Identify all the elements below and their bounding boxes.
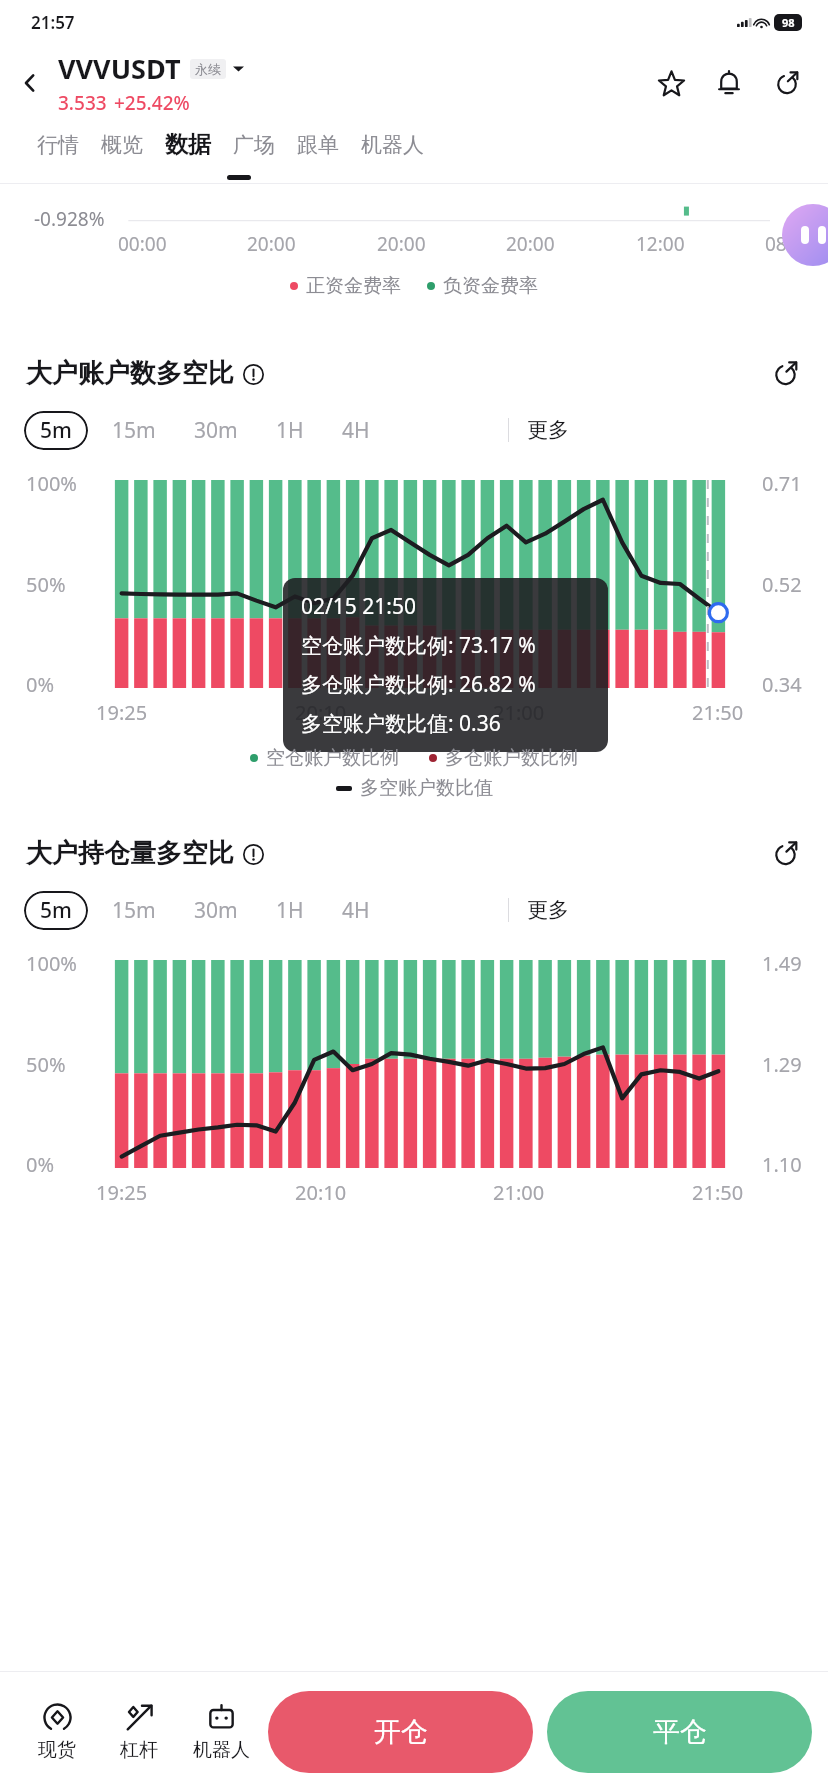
staticText: 15m bbox=[112, 896, 156, 925]
staticText: 0% bbox=[26, 1151, 55, 1178]
staticText: 1H bbox=[276, 896, 304, 925]
staticText: 4H bbox=[342, 896, 370, 925]
staticText: 08:00 bbox=[765, 231, 814, 257]
button[interactable]: 机器人 bbox=[350, 124, 435, 166]
staticText: 0% bbox=[26, 671, 55, 698]
staticText: 开仓 bbox=[374, 1715, 428, 1749]
button[interactable]: 15m bbox=[98, 408, 170, 453]
staticText: 现货 bbox=[38, 1738, 76, 1762]
button[interactable]: 跟单 bbox=[286, 124, 350, 166]
staticText: 50% bbox=[26, 1051, 66, 1078]
button[interactable]: Expand chart bbox=[764, 832, 806, 874]
staticText: 12:00 bbox=[636, 231, 685, 257]
staticText: 30m bbox=[194, 896, 238, 925]
button[interactable]: 杠杆 bbox=[98, 1696, 180, 1768]
staticText: 大户账户数多空比 bbox=[26, 357, 234, 390]
staticText: 1.49 bbox=[762, 950, 802, 977]
staticText: 跟单 bbox=[297, 132, 339, 158]
staticText: 21:00 bbox=[493, 1179, 545, 1206]
staticText: 20:10 bbox=[295, 699, 347, 726]
staticText: 21:00 bbox=[493, 699, 545, 726]
staticText: 平仓 bbox=[653, 1715, 707, 1749]
staticText: 02/15 21:50 bbox=[301, 592, 416, 621]
staticText: 数据 bbox=[165, 130, 211, 159]
staticText: +25.42% bbox=[114, 90, 190, 116]
staticText: 5m bbox=[40, 896, 72, 925]
button[interactable]: 更多 bbox=[509, 889, 573, 931]
staticText: 负资金费率 bbox=[443, 274, 538, 298]
staticText: 30m bbox=[194, 416, 238, 445]
staticText: 多空账户数比值 bbox=[360, 776, 493, 800]
button[interactable]: Back bbox=[8, 61, 52, 105]
staticText: 多空账户数比值: 0.36 bbox=[301, 709, 501, 738]
staticText: 更多 bbox=[527, 417, 569, 443]
staticText: -0.928% bbox=[34, 206, 105, 232]
staticText: 行情 bbox=[37, 132, 79, 158]
staticText: 100% bbox=[26, 470, 77, 497]
button[interactable]: Alerts bbox=[706, 60, 752, 106]
staticText: 21:57 bbox=[31, 11, 75, 34]
staticText: 19:25 bbox=[96, 1179, 148, 1206]
staticText: 20:00 bbox=[247, 231, 296, 257]
button[interactable]: 15m bbox=[98, 888, 170, 933]
button[interactable]: 数据 bbox=[154, 122, 222, 167]
staticText: 19:25 bbox=[96, 699, 148, 726]
staticText: 00:00 bbox=[118, 231, 167, 257]
button[interactable]: 开仓 bbox=[268, 1691, 533, 1773]
staticText: 机器人 bbox=[193, 1738, 250, 1762]
button[interactable]: Select contract bbox=[233, 63, 244, 74]
staticText: 4H bbox=[342, 416, 370, 445]
staticText: 20:00 bbox=[506, 231, 555, 257]
staticText: 机器人 bbox=[361, 132, 424, 158]
button[interactable]: 30m bbox=[180, 408, 252, 453]
button[interactable]: 更多 bbox=[509, 409, 573, 451]
staticText: 98 bbox=[782, 15, 795, 30]
button[interactable]: 4H bbox=[328, 408, 384, 453]
staticText: 21:50 bbox=[692, 699, 744, 726]
staticText: 15m bbox=[112, 416, 156, 445]
staticText: 5m bbox=[40, 416, 72, 445]
staticText: 100% bbox=[26, 950, 77, 977]
staticText: 更多 bbox=[527, 897, 569, 923]
button[interactable]: 5m bbox=[24, 411, 88, 450]
button[interactable]: 平仓 bbox=[547, 1691, 812, 1773]
staticText: 1.10 bbox=[762, 1151, 802, 1178]
button[interactable]: 机器人 bbox=[180, 1696, 262, 1768]
staticText: 20:10 bbox=[295, 1179, 347, 1206]
staticText: 大户持仓量多空比 bbox=[26, 837, 234, 870]
staticText: 空仓账户数比例 bbox=[266, 746, 399, 770]
button[interactable]: 1H bbox=[262, 408, 318, 453]
button[interactable]: 广场 bbox=[222, 124, 286, 166]
button[interactable]: Info bbox=[241, 842, 265, 866]
button[interactable]: Share bbox=[764, 60, 810, 106]
staticText: 空仓账户数比例: 73.17 % bbox=[301, 631, 536, 660]
button[interactable]: Info bbox=[241, 362, 265, 386]
staticText: 1.29 bbox=[762, 1051, 802, 1078]
button[interactable]: Expand chart bbox=[764, 352, 806, 394]
staticText: 正资金费率 bbox=[306, 274, 401, 298]
button[interactable]: 行情 bbox=[26, 124, 90, 166]
button[interactable]: 1H bbox=[262, 888, 318, 933]
staticText: 杠杆 bbox=[120, 1738, 158, 1762]
button[interactable]: 4H bbox=[328, 888, 384, 933]
staticText: 0.34 bbox=[762, 671, 802, 698]
staticText: 永续 bbox=[195, 61, 221, 77]
button[interactable]: 现货 bbox=[16, 1696, 98, 1768]
staticText: 50% bbox=[26, 571, 66, 598]
button[interactable]: Assistant bbox=[782, 204, 828, 266]
button[interactable]: 5m bbox=[24, 891, 88, 930]
staticText: 0.52 bbox=[762, 571, 802, 598]
staticText: 21:50 bbox=[692, 1179, 744, 1206]
staticText: 概览 bbox=[101, 132, 143, 158]
staticText: 多仓账户数比例: 26.82 % bbox=[301, 670, 536, 699]
staticText: 0.71 bbox=[762, 470, 802, 497]
staticText: VVVUSDT bbox=[58, 50, 181, 87]
staticText: 1H bbox=[276, 416, 304, 445]
button[interactable]: 30m bbox=[180, 888, 252, 933]
staticText: 广场 bbox=[233, 132, 275, 158]
staticText: 多仓账户数比例 bbox=[445, 746, 578, 770]
staticText: 20:00 bbox=[377, 231, 426, 257]
staticText: 3.533 bbox=[58, 90, 107, 116]
button[interactable]: Favorite bbox=[648, 60, 694, 106]
button[interactable]: 概览 bbox=[90, 124, 154, 166]
